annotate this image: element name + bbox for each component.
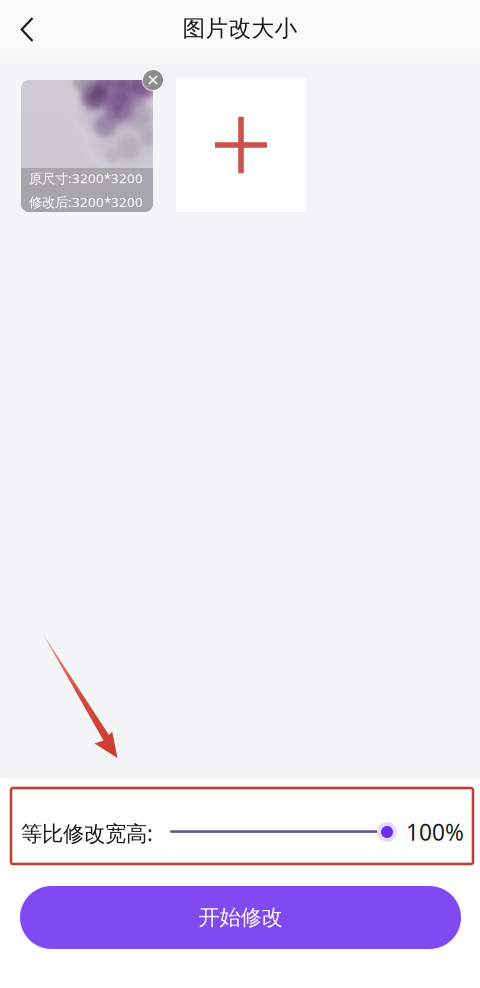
staticText: 图片改大小 [182, 15, 297, 42]
staticText: 原尺寸:3200*3200 [29, 169, 143, 187]
staticText: 开始修改 [198, 904, 282, 931]
button[interactable]: Add image [176, 78, 306, 212]
button[interactable]: Back [0, 0, 52, 57]
button[interactable]: 开始修改 [20, 886, 461, 949]
staticText: 100% [406, 817, 464, 847]
staticText: 修改后:3200*3200 [29, 193, 143, 211]
button[interactable]: Selected image, 3200 by 3200 [21, 80, 153, 212]
staticText: 等比修改宽高: [21, 819, 153, 847]
button[interactable]: Remove image [141, 68, 164, 91]
